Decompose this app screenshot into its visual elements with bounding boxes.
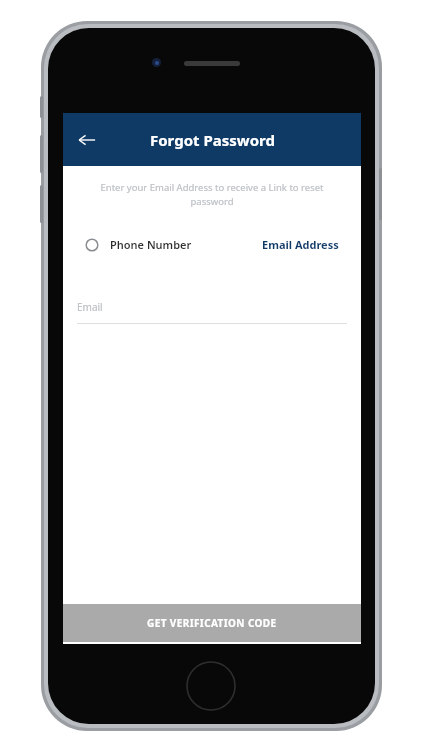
staticText: Phone Number bbox=[110, 237, 192, 252]
button[interactable]: Phone Number bbox=[85, 233, 192, 256]
staticText: GET VERIFICATION CODE bbox=[147, 616, 277, 630]
button[interactable]: GET VERIFICATION CODE bbox=[63, 604, 361, 642]
staticText: Forgot Password bbox=[150, 130, 275, 150]
button[interactable]: Email Address bbox=[262, 233, 339, 256]
staticText: Email bbox=[77, 300, 103, 314]
staticText: Email Address bbox=[262, 237, 339, 252]
button[interactable]: Email bbox=[77, 300, 347, 324]
staticText: Enter your Email Address to receive a Li… bbox=[95, 181, 329, 208]
button[interactable]: Back bbox=[69, 122, 105, 158]
